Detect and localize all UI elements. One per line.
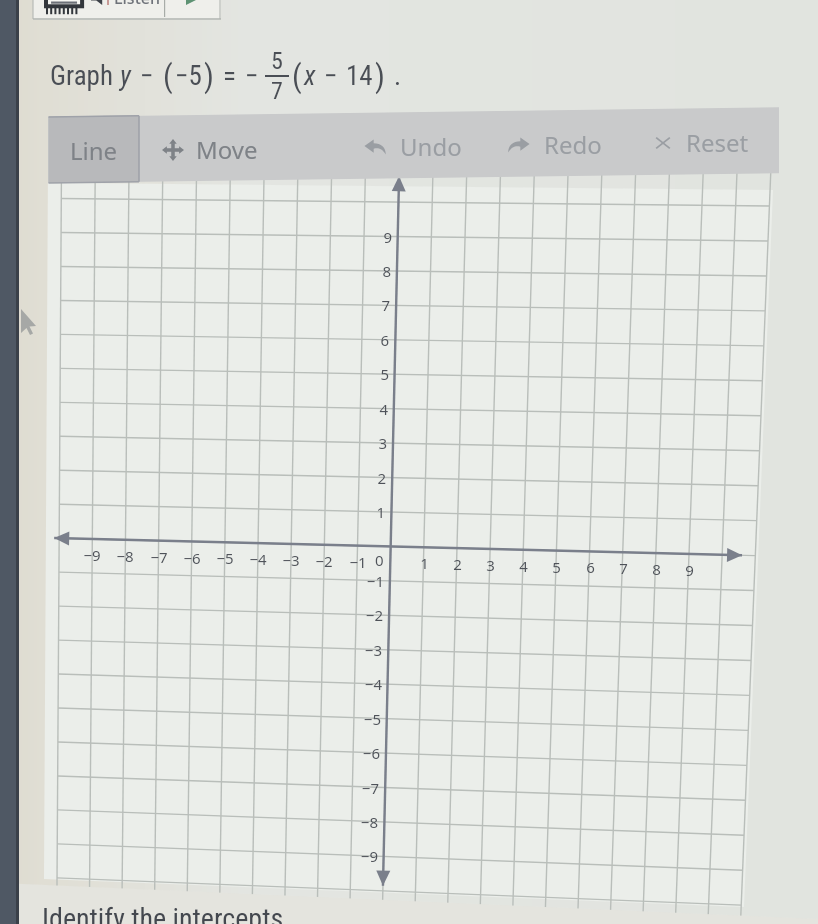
staticText: Graph — [50, 60, 113, 92]
staticText: Undo — [400, 130, 462, 163]
staticText: −2 — [315, 551, 333, 571]
staticText: ) — [204, 58, 214, 94]
staticText: 5 — [552, 557, 561, 577]
staticText: Redo — [544, 128, 602, 161]
staticText: 3 — [378, 433, 387, 453]
button[interactable]: Play — [165, 0, 221, 20]
button[interactable]: Listen — [33, 0, 164, 20]
staticText: Move — [196, 133, 258, 166]
staticText: − — [324, 60, 338, 92]
staticText: Line — [70, 134, 118, 167]
button[interactable]: Undo — [352, 113, 492, 179]
staticText: −1 — [366, 571, 384, 591]
staticText: 8 — [652, 559, 661, 579]
button[interactable]: Redo — [496, 111, 636, 177]
button[interactable]: Move — [150, 116, 350, 182]
staticText: − — [245, 60, 259, 92]
button[interactable]: Line — [48, 117, 139, 183]
staticText: x — [304, 60, 316, 92]
staticText: −6 — [362, 743, 380, 763]
staticText: Reset — [686, 126, 749, 159]
staticText: ( — [163, 58, 173, 94]
staticText: 9 — [685, 560, 694, 580]
staticText: −8 — [116, 546, 134, 566]
staticText: 2 — [377, 468, 386, 488]
staticText: −7 — [150, 547, 168, 567]
staticText: = — [223, 60, 236, 92]
staticText: 3 — [486, 555, 495, 575]
staticText: −5 — [216, 548, 234, 568]
staticText: ) — [375, 58, 385, 94]
staticText: . — [394, 60, 402, 92]
staticText: 1 — [420, 553, 429, 573]
staticText: 4 — [519, 556, 528, 576]
staticText: −1 — [349, 552, 367, 572]
staticText: y — [120, 60, 131, 92]
staticText: 9 — [383, 227, 392, 247]
staticText: 7 — [271, 77, 283, 105]
staticText: 8 — [382, 261, 391, 281]
staticText: 0 — [375, 550, 384, 570]
staticText: 5 — [271, 47, 283, 75]
staticText: 14 — [346, 60, 373, 92]
staticText: −3 — [282, 550, 300, 570]
staticText: 2 — [453, 554, 462, 574]
staticText: − — [140, 60, 154, 92]
staticText: Identify the intercepts. — [42, 902, 291, 924]
staticText: −2 — [365, 605, 383, 625]
staticText: −7 — [361, 778, 379, 798]
staticText: 6 — [380, 330, 389, 350]
staticText: 5 — [380, 364, 389, 384]
staticText: ( — [292, 58, 302, 94]
staticText: −9 — [360, 846, 378, 866]
staticText: −5 — [363, 709, 381, 729]
staticText: −4 — [249, 549, 267, 569]
staticText: 6 — [586, 557, 595, 577]
staticText: −6 — [183, 548, 201, 568]
staticText: 7 — [619, 558, 628, 578]
staticText: −8 — [360, 812, 378, 832]
staticText: −9 — [83, 545, 101, 565]
button[interactable]: Reset — [642, 109, 778, 175]
staticText: −3 — [364, 640, 382, 660]
staticText: 4 — [379, 399, 388, 419]
staticText: 1 — [376, 502, 385, 522]
staticText: −5 — [175, 60, 202, 92]
staticText: −4 — [364, 674, 382, 694]
staticText: 7 — [381, 295, 390, 315]
staticText: Listen — [114, 0, 160, 9]
